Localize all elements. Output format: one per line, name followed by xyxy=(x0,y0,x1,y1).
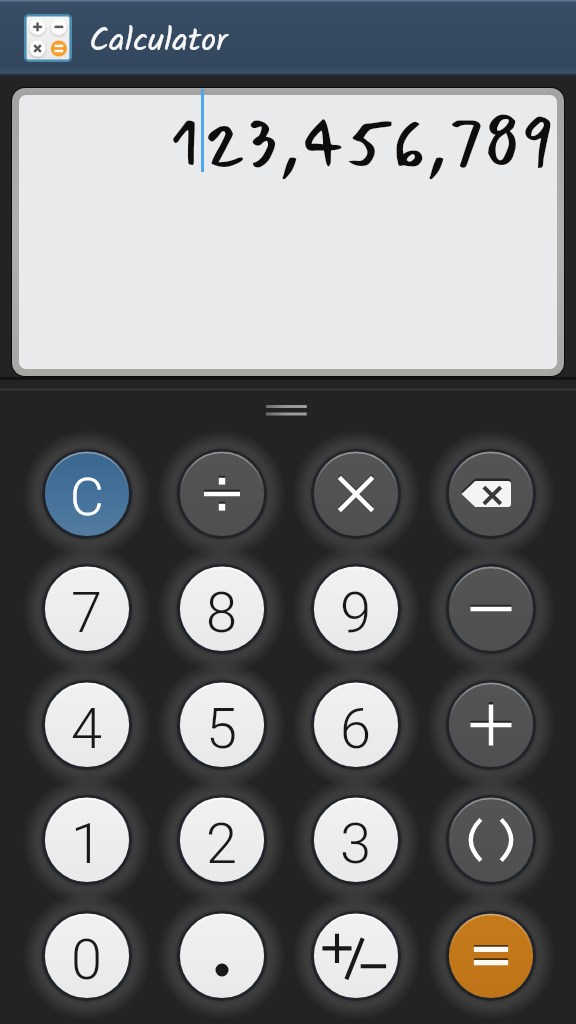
staticText: 3 xyxy=(340,811,372,877)
button[interactable]: Plus xyxy=(446,680,536,770)
staticText: 9 xyxy=(340,580,372,646)
staticText: 7 xyxy=(71,580,103,646)
staticText: C xyxy=(70,467,104,528)
button[interactable]: Clear xyxy=(42,449,132,539)
button[interactable]: Parentheses xyxy=(446,795,536,885)
staticText: 23,456,789 xyxy=(204,89,554,196)
staticText: 2 xyxy=(206,811,238,877)
button[interactable]: 2 xyxy=(177,795,267,885)
staticText: 8 xyxy=(206,580,238,646)
button[interactable] xyxy=(177,911,267,1001)
button[interactable]: 4 xyxy=(42,680,132,770)
staticText: 0 xyxy=(71,927,103,993)
button[interactable]: Equals xyxy=(446,911,536,1001)
button[interactable]: 6 xyxy=(311,680,401,770)
button[interactable]: 0 xyxy=(42,911,132,1001)
staticText: 1 xyxy=(71,811,103,877)
button[interactable]: 7 xyxy=(42,564,132,654)
staticText: 5 xyxy=(206,696,238,762)
button[interactable]: 3 xyxy=(311,795,401,885)
button[interactable]: 5 xyxy=(177,680,267,770)
staticText: Calculator xyxy=(89,15,228,68)
button[interactable]: Toggle sign xyxy=(311,911,401,1001)
button[interactable]: Multiply xyxy=(311,449,401,539)
button[interactable]: 8 xyxy=(177,564,267,654)
staticText: 6 xyxy=(340,696,372,762)
button[interactable]: 1 xyxy=(42,795,132,885)
staticText: 4 xyxy=(71,696,103,762)
button[interactable]: 9 xyxy=(311,564,401,654)
staticText: 1 xyxy=(169,89,201,196)
button[interactable]: Backspace xyxy=(446,449,536,539)
button[interactable]: Divide xyxy=(177,449,267,539)
button[interactable]: Minus xyxy=(446,564,536,654)
